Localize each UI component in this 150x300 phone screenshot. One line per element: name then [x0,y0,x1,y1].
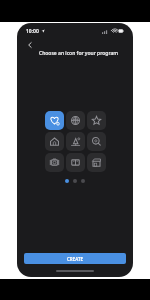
button[interactable]: Back [23,38,36,51]
button[interactable]: CREATE [24,253,126,264]
button[interactable]: Heart [45,111,64,130]
button[interactable]: Park [66,132,85,151]
button[interactable]: Home [45,132,64,151]
staticText: Choose an icon for your program [39,50,118,57]
staticText: CREATE [67,256,84,262]
button[interactable]: Globe [66,111,85,130]
button[interactable]: Page 1 [65,179,69,183]
button[interactable]: Page 3 [81,179,85,183]
button[interactable]: Shop [87,153,106,172]
button[interactable]: Camera [45,153,64,172]
staticText: 10:00 [26,28,39,35]
button[interactable]: Page 2 [73,179,77,183]
button[interactable]: Star [87,111,106,130]
button[interactable]: Book [66,153,85,172]
button[interactable]: Search [87,132,106,151]
